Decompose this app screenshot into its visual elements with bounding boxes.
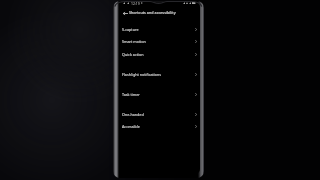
button[interactable]: S-capture bbox=[119, 23, 200, 35]
button[interactable]: Task timer bbox=[119, 88, 200, 100]
button[interactable]: Accessible bbox=[119, 120, 200, 132]
button[interactable]: One-handed bbox=[119, 108, 200, 120]
button[interactable]: Smart motion bbox=[119, 35, 200, 47]
button[interactable]: Back bbox=[122, 9, 128, 18]
staticText: S-capture bbox=[122, 27, 139, 32]
staticText: Smart motion bbox=[122, 39, 146, 44]
button[interactable]: Flashlight notifications bbox=[119, 68, 200, 80]
staticText: Task timer bbox=[122, 92, 140, 97]
staticText: Flashlight notifications bbox=[122, 72, 162, 77]
staticText: One-handed bbox=[122, 112, 144, 117]
button[interactable]: Quick action bbox=[119, 48, 200, 60]
staticText: Accessible bbox=[122, 124, 140, 129]
staticText: Shortcuts and accessibility bbox=[129, 10, 176, 15]
staticText: Quick action bbox=[122, 52, 144, 57]
staticText: 12:19 bbox=[131, 2, 140, 5]
